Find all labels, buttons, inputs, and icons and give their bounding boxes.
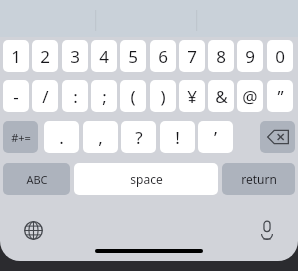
staticText: 7	[187, 45, 197, 68]
staticText: ,	[98, 126, 103, 149]
button[interactable]: 4	[91, 40, 117, 72]
button[interactable]: &	[208, 80, 234, 112]
staticText: 1	[11, 45, 21, 68]
staticText: ABC	[26, 172, 48, 187]
staticText: 8	[216, 45, 226, 68]
staticText: ’	[214, 126, 217, 149]
button[interactable]: !	[160, 121, 195, 153]
button[interactable]: 9	[237, 40, 263, 72]
button[interactable]: /	[32, 80, 58, 112]
staticText: 5	[128, 45, 138, 68]
button[interactable]: 1	[3, 40, 29, 72]
staticText: 0	[275, 45, 285, 68]
button[interactable]: )	[150, 80, 176, 112]
button[interactable]: 3	[62, 40, 88, 72]
button[interactable]: @	[237, 80, 263, 112]
button[interactable]: ;	[91, 80, 117, 112]
staticText: &	[215, 85, 228, 108]
staticText: -	[13, 85, 19, 108]
button[interactable]: ?	[121, 121, 156, 153]
button[interactable]: 6	[150, 40, 176, 72]
button[interactable]: 5	[120, 40, 146, 72]
staticText: space	[130, 171, 163, 187]
button[interactable]: :	[62, 80, 88, 112]
staticText: #+=	[11, 130, 31, 145]
staticText: ”	[277, 85, 284, 108]
button[interactable]: space	[74, 163, 218, 195]
staticText: ?	[135, 126, 143, 149]
staticText: :	[73, 85, 78, 108]
button[interactable]: ,	[83, 121, 118, 153]
button[interactable]: 0	[267, 40, 293, 72]
button[interactable]: return	[222, 163, 295, 195]
staticText: 4	[99, 45, 109, 68]
button[interactable]: .	[44, 121, 79, 153]
button[interactable]: ABC	[3, 163, 70, 195]
button[interactable]: Delete	[260, 121, 295, 153]
button[interactable]: 8	[208, 40, 234, 72]
button[interactable]: 7	[179, 40, 205, 72]
staticText: )	[160, 85, 166, 108]
staticText: 2	[40, 45, 50, 68]
button[interactable]: ¥	[179, 80, 205, 112]
staticText: 9	[245, 45, 255, 68]
button[interactable]: ”	[267, 80, 293, 112]
button[interactable]: Switch keyboard	[18, 215, 48, 245]
staticText: /	[42, 85, 49, 108]
staticText: ;	[102, 85, 107, 108]
staticText: return	[241, 171, 277, 187]
staticText: 3	[70, 45, 80, 68]
staticText: !	[175, 126, 180, 149]
button[interactable]: #+=	[3, 121, 38, 153]
button[interactable]: 2	[32, 40, 58, 72]
button[interactable]: -	[3, 80, 29, 112]
button[interactable]: ’	[198, 121, 233, 153]
button[interactable]: (	[120, 80, 146, 112]
button[interactable]: Dictate	[252, 215, 282, 245]
staticText: ¥	[187, 85, 197, 108]
staticText: .	[59, 126, 64, 149]
staticText: (	[130, 85, 136, 108]
staticText: @	[242, 85, 258, 108]
staticText: 6	[158, 45, 168, 68]
